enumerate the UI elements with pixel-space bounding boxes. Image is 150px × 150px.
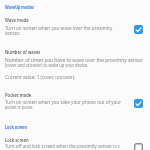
staticText: WaveUp modes <box>5 4 34 11</box>
button[interactable] <box>0 14 150 40</box>
button[interactable] <box>0 44 150 84</box>
staticText: Lock screen <box>5 124 27 131</box>
staticText: Current value: 1 (cover, uncover). <box>5 74 76 80</box>
staticText: Turn on screen when you take your phone … <box>5 99 122 105</box>
staticText: pocket or purse. <box>5 104 33 110</box>
staticText: Turn on screen when you wave over the pr… <box>5 25 113 36</box>
staticText: (cover and uncover) to wake up your devi… <box>5 62 89 68</box>
button[interactable] <box>134 25 143 34</box>
button[interactable] <box>134 99 143 108</box>
staticText: Pocket mode <box>5 91 32 99</box>
staticText: Lock screen <box>5 136 29 144</box>
staticText: Number of waves <box>5 48 41 56</box>
button[interactable] <box>0 132 150 150</box>
button[interactable] <box>134 143 143 150</box>
staticText: Wave mode <box>5 16 29 24</box>
button[interactable] <box>0 88 150 114</box>
staticText: Number of times you have to wave over th… <box>5 57 144 63</box>
staticText: Turn off and lock screen when the proxim… <box>5 143 120 149</box>
